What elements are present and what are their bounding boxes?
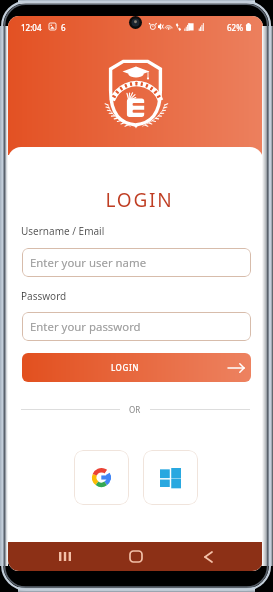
button[interactable]: Enter your user name bbox=[22, 248, 251, 277]
staticText: LOGIN bbox=[12, 187, 263, 213]
staticText: Enter your user name bbox=[30, 255, 147, 271]
staticText: LOGIN bbox=[22, 362, 228, 373]
staticText: 12:04 bbox=[21, 22, 42, 33]
staticText: Enter your password bbox=[30, 319, 141, 335]
staticText: 6 bbox=[61, 22, 66, 33]
staticText: Password bbox=[21, 289, 67, 303]
button[interactable]: Recent apps bbox=[45, 542, 85, 571]
button[interactable]: Back bbox=[188, 542, 228, 571]
staticText: 62% bbox=[227, 22, 243, 33]
button[interactable]: LOGIN bbox=[22, 353, 251, 382]
button[interactable]: Sign in with Microsoft bbox=[143, 450, 198, 505]
button[interactable]: Enter your password bbox=[22, 312, 251, 341]
button[interactable]: Home bbox=[116, 542, 156, 571]
staticText: Username / Email bbox=[21, 224, 105, 238]
button[interactable]: Sign in with Google bbox=[74, 450, 129, 505]
staticText: OR bbox=[129, 404, 141, 415]
